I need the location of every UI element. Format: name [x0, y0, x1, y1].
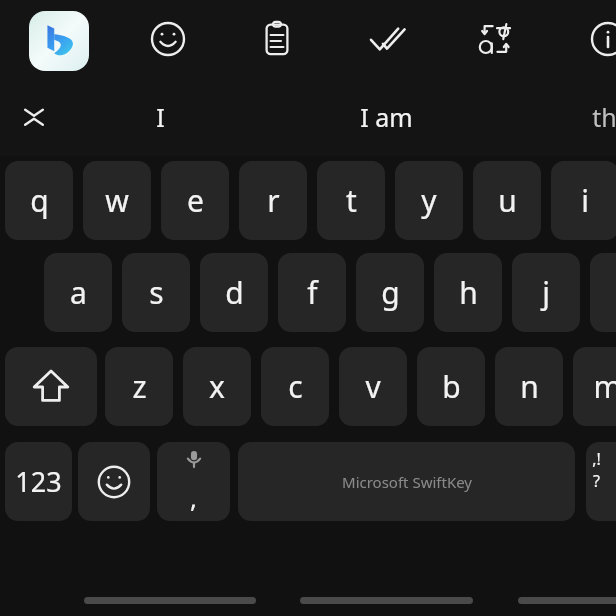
button[interactable]: g: [356, 253, 424, 332]
button[interactable]: y: [395, 161, 463, 240]
staticText: h: [459, 272, 478, 313]
button[interactable]: r: [239, 161, 307, 240]
button[interactable]: 123: [5, 442, 72, 521]
staticText: f: [307, 272, 318, 313]
button[interactable]: z: [105, 347, 173, 426]
button[interactable]: Info: [569, 0, 616, 78]
button[interactable]: Emoji keyboard: [78, 442, 150, 521]
button[interactable]: j: [512, 253, 580, 332]
staticText: th: [592, 100, 616, 134]
staticText: t: [346, 180, 357, 221]
button[interactable]: v: [339, 347, 407, 426]
button[interactable]: Emoji: [129, 0, 207, 78]
button[interactable]: m: [573, 347, 616, 426]
staticText: i: [581, 180, 589, 221]
staticText: ,: [190, 480, 197, 515]
button[interactable]: q: [5, 161, 73, 240]
button[interactable]: I am: [306, 78, 466, 156]
staticText: I: [156, 100, 165, 134]
button[interactable]: d: [200, 253, 268, 332]
button[interactable]: Microsoft SwiftKey: [238, 442, 575, 521]
staticText: x: [209, 366, 225, 407]
button[interactable]: Editor: [348, 0, 426, 78]
button[interactable]: a: [44, 253, 112, 332]
staticText: ,! ?: [592, 448, 601, 492]
button[interactable]: Clipboard: [238, 0, 316, 78]
button[interactable]: n: [495, 347, 563, 426]
staticText: y: [421, 180, 437, 221]
button[interactable]: e: [161, 161, 229, 240]
button[interactable]: Collapse suggestions: [6, 78, 62, 156]
button[interactable]: h: [434, 253, 502, 332]
button[interactable]: i: [551, 161, 616, 240]
button[interactable]: Voice input and comma: [157, 442, 230, 521]
staticText: g: [381, 272, 400, 313]
staticText: s: [149, 272, 164, 313]
button[interactable]: c: [261, 347, 329, 426]
staticText: d: [225, 272, 244, 313]
staticText: q: [30, 180, 49, 221]
button[interactable]: Shift: [5, 347, 97, 426]
button[interactable]: u: [473, 161, 541, 240]
button[interactable]: b: [417, 347, 485, 426]
staticText: Microsoft SwiftKey: [342, 472, 472, 492]
button[interactable]: k: [590, 253, 616, 332]
button[interactable]: s: [122, 253, 190, 332]
staticText: z: [132, 366, 147, 407]
button[interactable]: I: [80, 78, 240, 156]
button[interactable]: t: [317, 161, 385, 240]
staticText: I am: [360, 100, 413, 134]
staticText: j: [542, 272, 550, 313]
staticText: r: [267, 180, 280, 221]
button[interactable]: x: [183, 347, 251, 426]
staticText: c: [288, 366, 303, 407]
staticText: 123: [15, 463, 62, 500]
staticText: n: [520, 366, 539, 407]
staticText: b: [442, 366, 461, 407]
staticText: e: [187, 180, 204, 221]
staticText: u: [498, 180, 517, 221]
staticText: m: [593, 366, 616, 407]
button[interactable]: Bing Copilot: [29, 11, 89, 71]
button[interactable]: th: [524, 78, 616, 156]
button[interactable]: Translate: [456, 0, 534, 78]
staticText: w: [105, 180, 129, 221]
button[interactable]: f: [278, 253, 346, 332]
staticText: v: [365, 366, 381, 407]
staticText: a: [70, 272, 87, 313]
button[interactable]: Punctuation: [586, 442, 616, 521]
button[interactable]: w: [83, 161, 151, 240]
